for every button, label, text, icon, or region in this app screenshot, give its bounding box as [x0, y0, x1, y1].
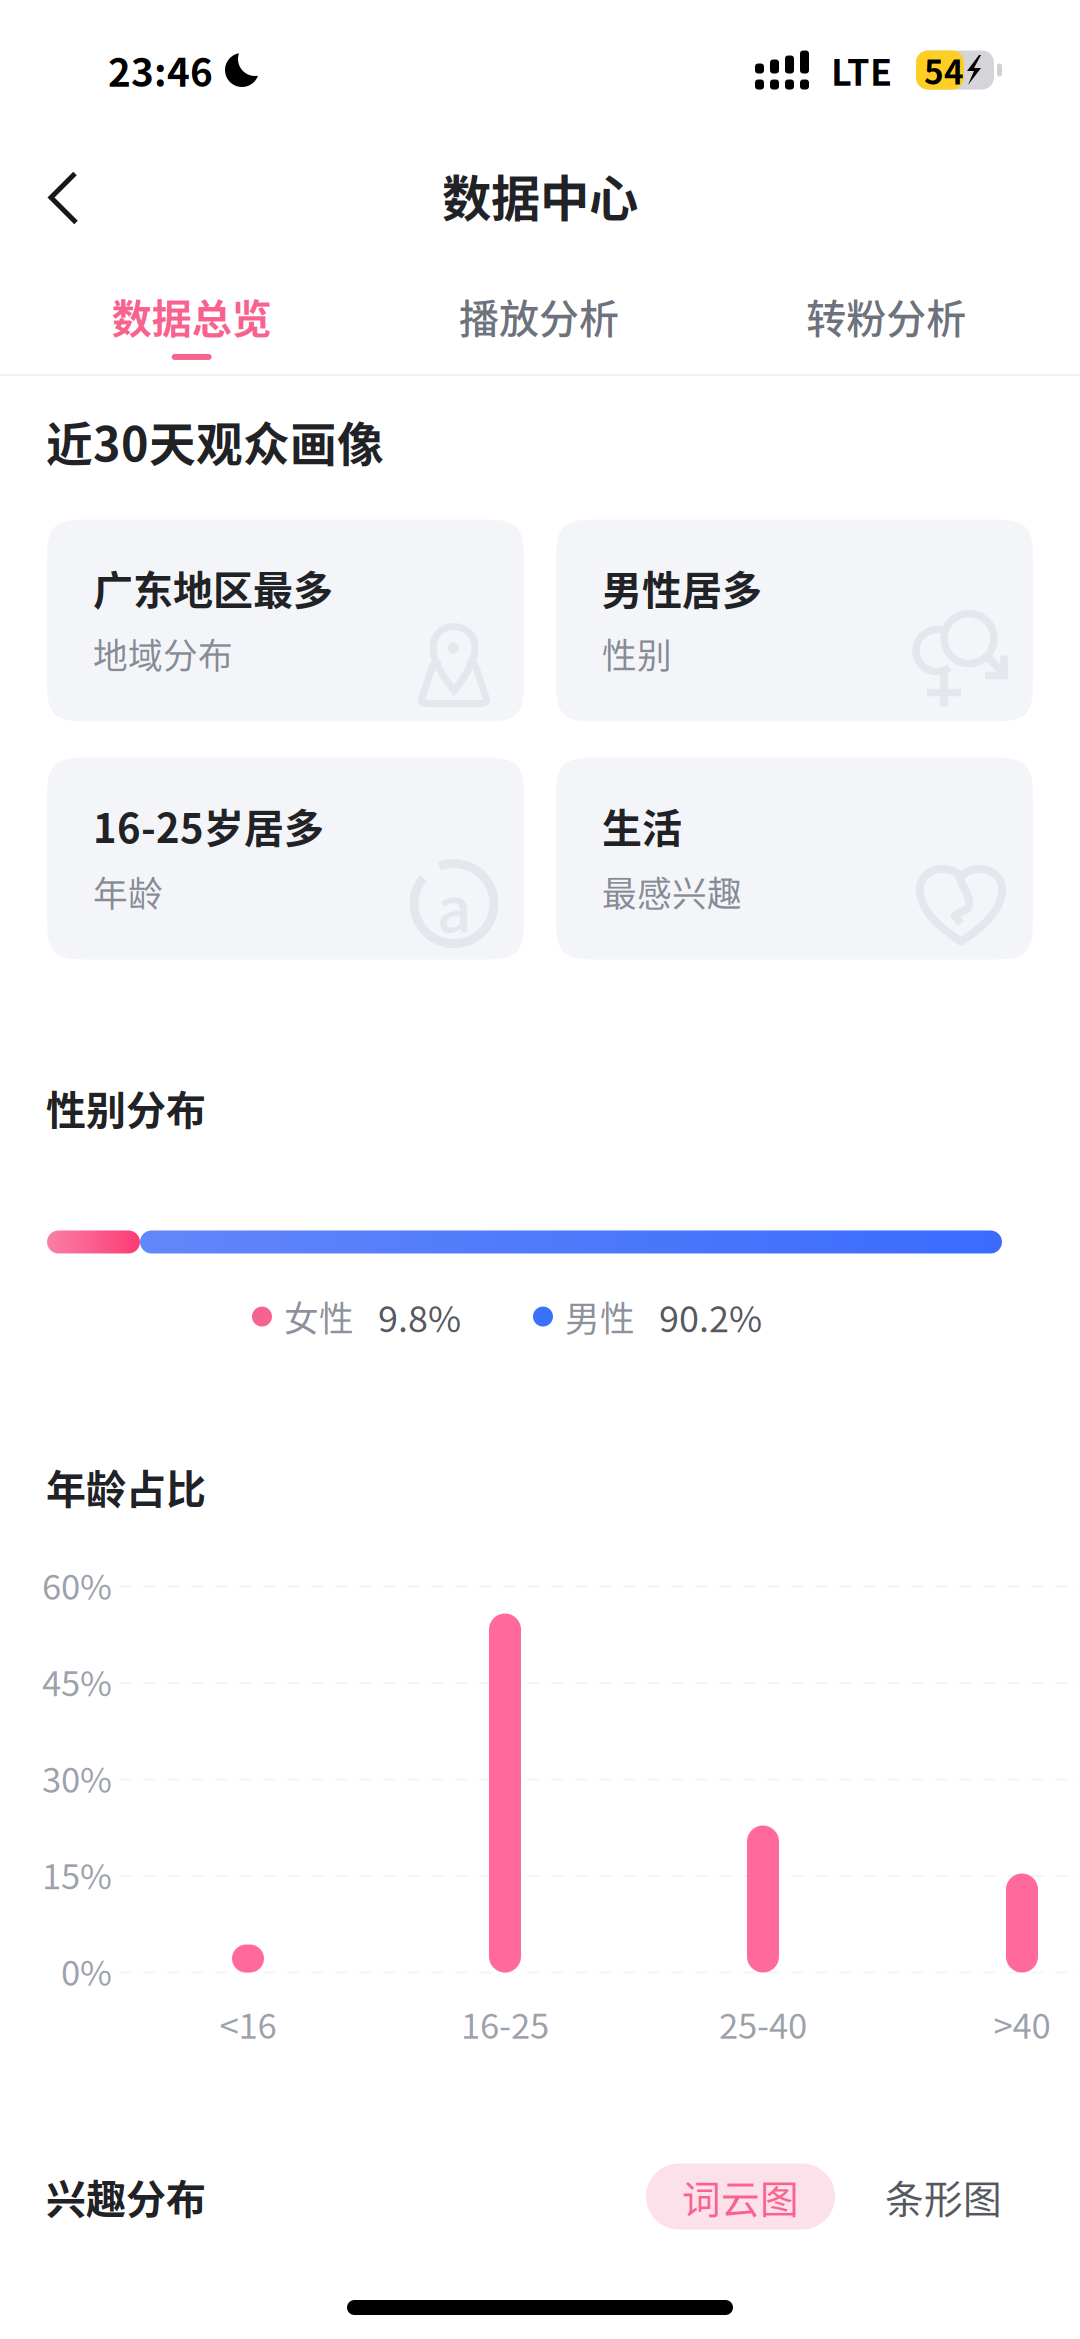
- staticText: 年龄占比: [46, 1458, 206, 1515]
- button[interactable]: 广东地区最多: [47, 520, 524, 722]
- button[interactable]: 生活: [556, 758, 1033, 960]
- staticText: 词云图: [682, 2168, 799, 2224]
- staticText: 最感兴趣: [602, 866, 742, 917]
- staticText: 性别: [602, 628, 672, 679]
- button[interactable]: 男性居多: [556, 520, 1033, 722]
- staticText: 16-25岁居多: [93, 797, 324, 854]
- staticText: 近30天观众画像: [46, 407, 384, 475]
- button[interactable]: 数据总览: [18, 242, 365, 382]
- staticText: 数据总览: [112, 287, 272, 345]
- staticText: 年龄: [93, 866, 163, 917]
- staticText: 90.2%: [659, 1290, 762, 1343]
- staticText: 9.8%: [378, 1290, 461, 1343]
- staticText: 兴趣分布: [46, 2168, 206, 2225]
- staticText: 男性: [565, 1291, 635, 1342]
- staticText: 54: [924, 46, 964, 94]
- staticText: 女性: [284, 1291, 354, 1342]
- button[interactable]: 词云图: [646, 2163, 835, 2229]
- staticText: a: [436, 861, 471, 950]
- staticText: 生活: [602, 797, 682, 854]
- staticText: 23:46: [108, 42, 213, 98]
- staticText: 16-25: [461, 1998, 549, 2049]
- staticText: 广东地区最多: [93, 559, 333, 616]
- staticText: <16: [219, 1998, 276, 2049]
- staticText: 60%: [42, 1559, 112, 1610]
- staticText: 条形图: [885, 2168, 1002, 2224]
- staticText: 播放分析: [459, 287, 619, 345]
- staticText: 转粉分析: [806, 287, 966, 345]
- staticText: 数据中心: [442, 159, 638, 231]
- button[interactable]: 条形图: [885, 2163, 1002, 2229]
- staticText: >40: [993, 1998, 1050, 2049]
- staticText: 25-40: [719, 1998, 807, 2049]
- staticText: 30%: [42, 1752, 112, 1803]
- button[interactable]: 转粉分析: [713, 242, 1060, 382]
- button[interactable]: Back: [0, 145, 111, 244]
- staticText: 0%: [61, 1945, 112, 1996]
- staticText: 地域分布: [93, 628, 233, 679]
- staticText: 男性居多: [602, 559, 762, 616]
- staticText: LTE: [831, 44, 892, 96]
- staticText: 45%: [42, 1656, 112, 1706]
- staticText: 15%: [42, 1849, 112, 1899]
- button[interactable]: 16-25岁居多: [47, 758, 524, 960]
- button[interactable]: 播放分析: [365, 242, 713, 382]
- staticText: 性别分布: [46, 1079, 206, 1136]
